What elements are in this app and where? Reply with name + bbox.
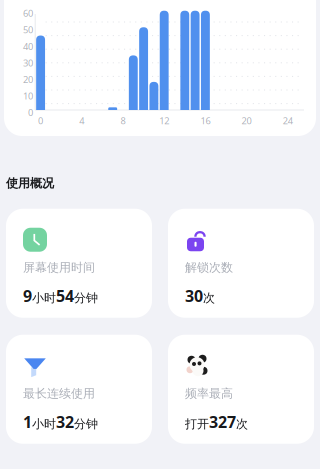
- staticText: 4: [79, 114, 84, 127]
- staticText: 20: [242, 114, 252, 127]
- staticText: 50: [23, 24, 33, 36]
- staticText: 30: [185, 285, 203, 306]
- staticText: 9: [23, 285, 32, 306]
- button[interactable]: 屏幕使用时间: [6, 209, 152, 318]
- staticText: 16: [200, 114, 210, 127]
- staticText: 32: [56, 411, 74, 432]
- staticText: 小时: [32, 417, 56, 431]
- staticText: 最长连续使用: [23, 386, 95, 401]
- staticText: 使用概况: [6, 176, 54, 191]
- staticText: 0: [38, 114, 43, 127]
- staticText: 24: [283, 114, 293, 127]
- staticText: 60: [23, 7, 33, 19]
- staticText: 1: [23, 411, 32, 432]
- staticText: 327: [209, 411, 236, 432]
- staticText: 分钟: [74, 291, 98, 305]
- staticText: 10: [23, 90, 33, 102]
- staticText: 解锁次数: [185, 260, 233, 275]
- staticText: 12: [159, 114, 169, 127]
- button[interactable]: 频率最高: [168, 335, 314, 444]
- staticText: 频率最高: [185, 386, 233, 401]
- staticText: 8: [120, 114, 125, 127]
- staticText: 40: [23, 40, 33, 52]
- staticText: 屏幕使用时间: [23, 260, 95, 275]
- staticText: 小时: [32, 291, 56, 305]
- staticText: 次: [236, 417, 248, 431]
- staticText: 30: [23, 57, 33, 69]
- staticText: 打开: [185, 417, 209, 431]
- button[interactable]: 最长连续使用: [6, 335, 152, 444]
- button[interactable]: 解锁次数: [168, 209, 314, 318]
- staticText: 20: [23, 73, 33, 86]
- staticText: 次: [203, 291, 215, 305]
- staticText: 0: [28, 106, 33, 119]
- staticText: 分钟: [74, 417, 98, 431]
- staticText: 54: [56, 285, 74, 306]
